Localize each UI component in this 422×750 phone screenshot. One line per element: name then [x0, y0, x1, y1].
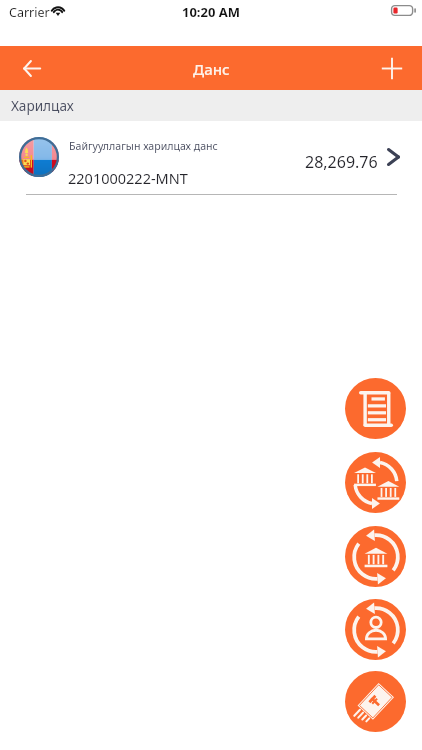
staticText: Харилцах	[11, 96, 74, 115]
button[interactable]: Байгууллагын харилцах данс	[0, 121, 422, 195]
button[interactable]: Transfer to person	[345, 599, 406, 660]
staticText: 28,269.76	[305, 151, 378, 173]
button[interactable]: Back	[4, 46, 60, 90]
staticText: 10:20 AM	[0, 3, 422, 21]
button[interactable]: Add account	[364, 46, 420, 90]
button[interactable]: Statement	[345, 378, 406, 439]
staticText: Данс	[193, 59, 230, 79]
staticText: Байгууллагын харилцах данс	[69, 139, 218, 153]
staticText: 2201000222-MNT	[68, 168, 188, 188]
button[interactable]: Cash	[345, 671, 406, 732]
button[interactable]: Bank transfer	[345, 452, 406, 513]
button[interactable]: Internal transfer	[345, 526, 406, 587]
staticText: Carrier	[9, 4, 50, 21]
